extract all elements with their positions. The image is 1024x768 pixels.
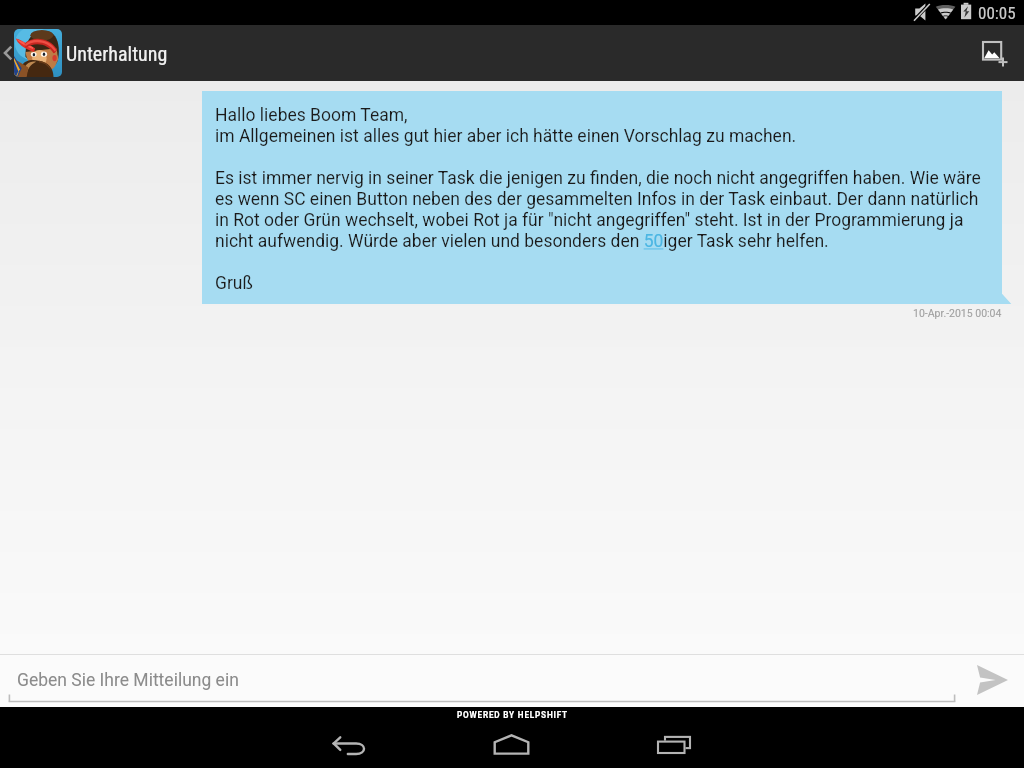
staticText: Hallo liebes Boom Team, im Allgemeinen i…: [215, 105, 990, 294]
staticText: Unterhaltung: [66, 42, 168, 65]
button[interactable]: Send: [960, 655, 1024, 707]
button[interactable]: Geben Sie Ihre Mitteilung ein: [0, 655, 956, 707]
button[interactable]: Recent apps: [634, 721, 714, 768]
staticText: 10-Apr.-2015 00:04: [913, 307, 1002, 319]
button[interactable]: Navigate up: [3, 29, 62, 77]
button[interactable]: Home: [471, 720, 551, 768]
staticText: Geben Sie Ihre Mitteilung ein: [17, 670, 239, 691]
button[interactable]: Back: [309, 721, 389, 768]
staticText: 00:05: [978, 3, 1016, 23]
button[interactable]: Attach image: [968, 25, 1024, 81]
staticText: POWERED BY HELPSHIFT: [457, 710, 568, 720]
